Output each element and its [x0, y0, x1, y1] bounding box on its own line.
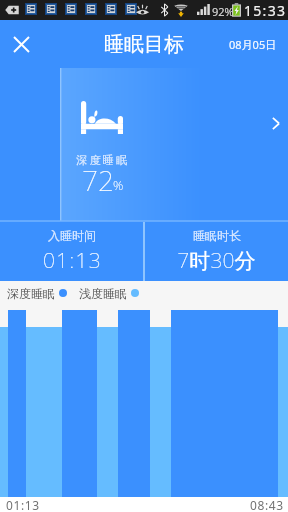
staticText: 睡眠目标	[104, 32, 184, 57]
staticText: %	[113, 176, 124, 194]
button[interactable]: Close	[7, 30, 35, 58]
staticText: 92%	[212, 4, 234, 19]
staticText: 深度睡眠	[7, 286, 55, 300]
button[interactable]: Sleep goal details	[264, 111, 288, 135]
staticText: 01:13	[43, 246, 102, 275]
staticText: 入睡时间	[48, 228, 96, 243]
staticText: 15:33	[244, 1, 287, 20]
staticText: 01:13	[6, 497, 40, 512]
staticText: 08:43	[250, 497, 284, 512]
staticText: 浅度睡眠	[79, 286, 127, 300]
button[interactable]: Sleep chart	[0, 306, 288, 497]
staticText: 睡眠时长	[193, 228, 241, 243]
staticText: 08月05日	[229, 37, 277, 52]
staticText: 72	[82, 161, 114, 199]
button[interactable]: 睡眠时长	[145, 222, 288, 281]
staticText: 7时30分	[177, 246, 256, 275]
staticText: 深度睡眠	[76, 153, 130, 167]
button[interactable]: 入睡时间	[0, 222, 143, 281]
